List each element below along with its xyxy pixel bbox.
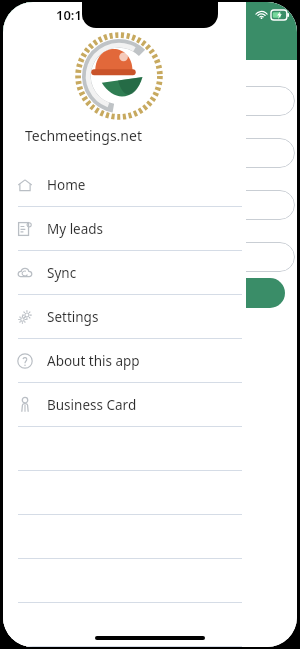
button[interactable]: Settings bbox=[3, 295, 246, 338]
staticText: Phone: bbox=[11, 120, 48, 135]
staticText: e-mail: bbox=[11, 172, 46, 187]
staticText: Settings bbox=[47, 308, 99, 326]
staticText: Techmeetings.net bbox=[25, 126, 142, 145]
button[interactable]: Sync bbox=[3, 251, 246, 294]
button[interactable] bbox=[15, 278, 285, 308]
staticText: Exhibitor Name: bbox=[11, 224, 95, 239]
staticText: Sync bbox=[47, 264, 77, 282]
button[interactable] bbox=[11, 190, 295, 220]
button[interactable]: My leads bbox=[3, 207, 246, 250]
button[interactable] bbox=[11, 242, 295, 272]
button[interactable] bbox=[11, 86, 295, 116]
staticText: Home bbox=[47, 176, 86, 194]
button[interactable]: Home bbox=[3, 163, 246, 206]
button[interactable] bbox=[11, 138, 295, 168]
staticText: 10:15 bbox=[56, 6, 90, 24]
staticText: My leads bbox=[47, 220, 104, 238]
staticText: About this app bbox=[47, 352, 140, 370]
button[interactable]: Business Card bbox=[3, 383, 246, 426]
staticText: Business Card bbox=[47, 396, 137, 414]
button[interactable]: About this app bbox=[3, 339, 246, 382]
